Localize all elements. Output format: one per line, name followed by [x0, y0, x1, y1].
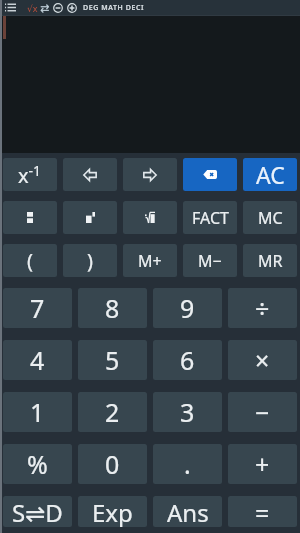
button[interactable]: . — [153, 444, 222, 484]
staticText: 7 — [30, 291, 45, 325]
button[interactable]: = — [228, 496, 297, 527]
button[interactable]: ÷ — [228, 288, 297, 328]
button[interactable]: S⇌D — [3, 496, 72, 527]
staticText: S⇌D — [12, 496, 63, 527]
button[interactable]: Ans — [153, 496, 222, 527]
button[interactable]: Swap — [39, 2, 51, 14]
button[interactable]: Zoom in — [66, 2, 78, 14]
staticText: 4 — [30, 343, 45, 377]
staticText: − — [255, 395, 270, 429]
button[interactable]: Backspace — [183, 158, 237, 191]
button[interactable]: Square root — [26, 2, 38, 14]
staticText: + — [255, 447, 270, 481]
other: Move left — [83, 169, 97, 181]
staticText: 0 — [105, 447, 120, 481]
button[interactable]: 7 — [3, 288, 72, 328]
button[interactable]: − — [228, 392, 297, 432]
other: Move right — [143, 169, 157, 181]
button[interactable]: 6 — [153, 340, 222, 380]
staticText: DEG MATH DECI — [83, 3, 145, 13]
staticText: ⇄ — [40, 2, 50, 14]
button[interactable]: + — [228, 444, 297, 484]
button[interactable]: Zoom out — [52, 2, 64, 14]
staticText: M+ — [138, 250, 162, 272]
staticText: = — [255, 496, 270, 527]
button[interactable]: M+ — [123, 244, 177, 277]
button[interactable]: 0 — [78, 444, 147, 484]
staticText: MR — [258, 250, 283, 272]
staticText: ( — [27, 247, 33, 274]
button[interactable]: Power — [63, 201, 117, 234]
button[interactable]: Fraction — [3, 201, 57, 234]
button[interactable]: Move right — [123, 158, 177, 191]
button[interactable]: Nth root — [123, 201, 177, 234]
button[interactable]: Menu — [4, 1, 17, 14]
button[interactable]: 3 — [153, 392, 222, 432]
staticText: 1 — [30, 395, 45, 429]
other: Nth root — [145, 212, 155, 223]
button[interactable]: × — [228, 340, 297, 380]
button[interactable]: % — [3, 444, 72, 484]
other: Fraction — [27, 212, 33, 223]
staticText: AC — [256, 159, 285, 190]
staticText: √x — [27, 2, 38, 14]
staticText: 8 — [105, 291, 120, 325]
staticText: x-1 — [18, 161, 42, 189]
staticText: Exp — [92, 496, 133, 527]
staticText: % — [27, 447, 48, 481]
button[interactable]: M− — [183, 244, 237, 277]
staticText: ÷ — [255, 291, 270, 325]
other: Backspace — [203, 170, 217, 179]
button[interactable]: 4 — [3, 340, 72, 380]
staticText: ) — [87, 247, 93, 274]
button[interactable]: ) — [63, 244, 117, 277]
staticText: M− — [198, 250, 222, 272]
button[interactable]: Exp — [78, 496, 147, 527]
button[interactable]: MC — [243, 201, 297, 234]
button[interactable]: AC — [243, 158, 297, 191]
button[interactable]: 9 — [153, 288, 222, 328]
button[interactable]: x-1 — [3, 158, 57, 191]
button[interactable]: 2 — [78, 392, 147, 432]
button[interactable]: ( — [3, 244, 57, 277]
staticText: 5 — [105, 343, 120, 377]
staticText: 3 — [180, 395, 195, 429]
other: Power — [86, 212, 95, 223]
staticText: 6 — [180, 343, 195, 377]
staticText: × — [255, 343, 270, 377]
button[interactable]: MR — [243, 244, 297, 277]
staticText: FACT — [192, 207, 229, 229]
staticText: MC — [258, 207, 283, 229]
button[interactable]: 8 — [78, 288, 147, 328]
button[interactable]: FACT — [183, 201, 237, 234]
button[interactable]: 5 — [78, 340, 147, 380]
staticText: 2 — [105, 395, 120, 429]
staticText: 9 — [180, 291, 195, 325]
staticText: Ans — [167, 496, 209, 527]
button[interactable]: Move left — [63, 158, 117, 191]
button[interactable]: 1 — [3, 392, 72, 432]
staticText: . — [184, 447, 191, 481]
